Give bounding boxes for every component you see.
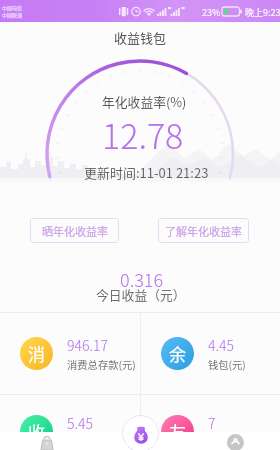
staticText: 邀请好友(人) bbox=[208, 435, 267, 450]
staticText: 消 bbox=[28, 341, 45, 366]
staticText: 7 bbox=[208, 413, 216, 433]
staticText: 钱包(元) bbox=[208, 357, 246, 372]
staticText: 12.78 bbox=[102, 110, 184, 159]
staticText: 消费总存款(元) bbox=[67, 357, 136, 372]
button[interactable]: 收 bbox=[0, 395, 140, 450]
button[interactable]: 消 bbox=[0, 313, 140, 394]
staticText: 年化收益率(%) bbox=[102, 92, 187, 111]
staticText: 中国电信 bbox=[2, 4, 23, 11]
staticText: 收益钱包 bbox=[114, 28, 167, 47]
staticText: 了解年化收益率 bbox=[165, 223, 242, 239]
staticText: 今日收益（元） bbox=[96, 285, 186, 304]
button[interactable]: 余 bbox=[141, 313, 280, 394]
button[interactable]: 了解年化收益率 bbox=[158, 218, 249, 243]
staticText: 4.45 bbox=[208, 335, 234, 355]
staticText: 收 bbox=[28, 419, 45, 444]
staticText: 余 bbox=[169, 341, 186, 366]
staticText: 晒年化收益率 bbox=[42, 223, 108, 239]
button[interactable]: 收益钱包 bbox=[122, 415, 159, 450]
staticText: 0.316 bbox=[120, 266, 164, 292]
button[interactable]: 商城 bbox=[33, 432, 61, 450]
staticText: 946.17 bbox=[67, 335, 108, 355]
staticText: 更新时间:11-01 21:23 bbox=[84, 163, 209, 182]
button[interactable]: 友 bbox=[141, 395, 280, 450]
staticText: 晚上9:23 bbox=[245, 6, 280, 19]
staticText: 23% bbox=[202, 6, 221, 19]
staticText: 友 bbox=[169, 419, 186, 444]
staticText: 中国联通 bbox=[2, 11, 23, 18]
button[interactable]: 我的 bbox=[222, 432, 248, 450]
button[interactable]: 晒年化收益率 bbox=[30, 218, 119, 243]
staticText: 5.45 bbox=[67, 413, 93, 433]
